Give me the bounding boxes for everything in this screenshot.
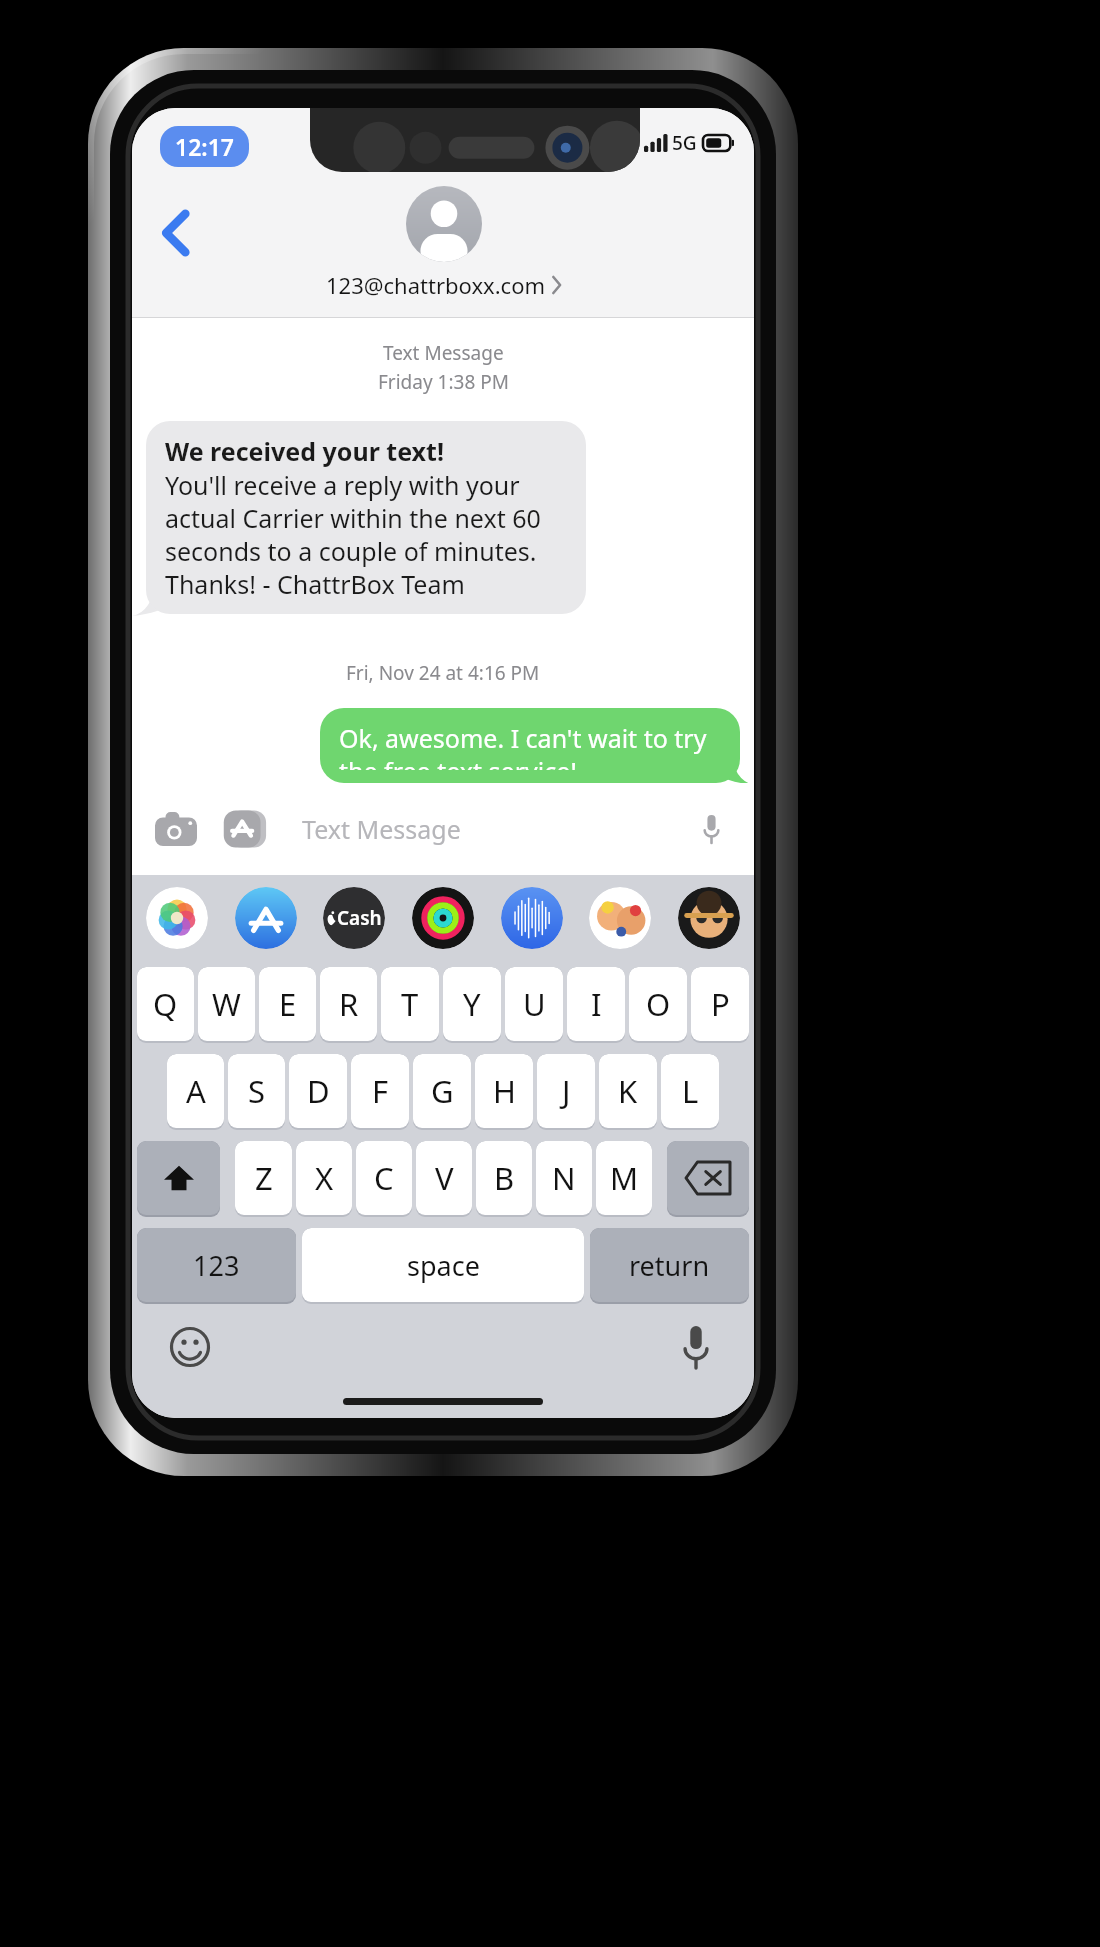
staticText: T bbox=[401, 983, 419, 1025]
staticText: E bbox=[279, 983, 297, 1025]
button[interactable]: Text Message bbox=[284, 802, 738, 856]
button[interactable]: E bbox=[259, 967, 316, 1041]
staticText: G bbox=[431, 1070, 454, 1112]
staticText: B bbox=[494, 1157, 515, 1199]
button[interactable]: Apps bbox=[216, 801, 272, 857]
staticText: S bbox=[248, 1070, 266, 1112]
button[interactable]: Dictation bbox=[670, 1321, 722, 1373]
button[interactable]: B bbox=[476, 1141, 532, 1215]
button[interactable]: T bbox=[381, 967, 439, 1041]
staticText: Text Message bbox=[302, 812, 461, 846]
button[interactable]: 123@chattrboxx.com bbox=[326, 186, 561, 300]
staticText: Friday 1:38 PM bbox=[378, 369, 509, 395]
staticText: A bbox=[186, 1070, 206, 1112]
staticText: Q bbox=[153, 983, 178, 1025]
staticText: I bbox=[591, 983, 602, 1025]
button[interactable]: C bbox=[356, 1141, 412, 1215]
staticText: space bbox=[407, 1247, 480, 1284]
button[interactable]: D bbox=[289, 1054, 347, 1128]
button[interactable]: K bbox=[599, 1054, 657, 1128]
staticText: 12:17 bbox=[175, 131, 234, 162]
button[interactable]: H bbox=[475, 1054, 533, 1128]
staticText: K bbox=[618, 1070, 638, 1112]
button[interactable]: App bbox=[412, 887, 474, 949]
button[interactable]: P bbox=[691, 967, 749, 1041]
staticText: C bbox=[374, 1157, 394, 1199]
button[interactable]: Q bbox=[137, 967, 194, 1041]
staticText: You'll receive a reply with your actual … bbox=[165, 468, 567, 601]
button[interactable]: space bbox=[302, 1228, 584, 1302]
button[interactable]: We received your text! bbox=[146, 421, 586, 614]
button[interactable]: App bbox=[501, 887, 563, 949]
button[interactable]: X bbox=[296, 1141, 352, 1215]
staticText: W bbox=[212, 983, 241, 1025]
staticText: return bbox=[629, 1247, 710, 1284]
button[interactable]: Emoji bbox=[164, 1321, 216, 1373]
button[interactable]: G bbox=[413, 1054, 471, 1128]
button[interactable]: U bbox=[505, 967, 563, 1041]
staticText: U bbox=[523, 983, 546, 1025]
button[interactable]: Z bbox=[235, 1141, 292, 1215]
button[interactable]: A bbox=[167, 1054, 224, 1128]
button[interactable]: S bbox=[228, 1054, 285, 1128]
staticText: 123@chattrboxx.com bbox=[326, 270, 546, 300]
staticText: 5G bbox=[672, 130, 697, 156]
button[interactable]: L bbox=[661, 1054, 719, 1128]
button[interactable]: M bbox=[596, 1141, 652, 1215]
button[interactable]: App bbox=[589, 887, 651, 949]
staticText: Fri, Nov 24 at 4:16 PM bbox=[346, 660, 540, 686]
button[interactable]: App bbox=[235, 887, 297, 949]
button[interactable]: O bbox=[629, 967, 687, 1041]
staticText: Z bbox=[255, 1157, 273, 1199]
staticText: Y bbox=[463, 983, 481, 1025]
button[interactable]: App bbox=[146, 887, 208, 949]
button[interactable]: Ok, awesome. I can't wait to try the fre… bbox=[320, 708, 740, 783]
staticText: O bbox=[646, 983, 671, 1025]
button[interactable]: R bbox=[320, 967, 377, 1041]
staticText: Text Message bbox=[383, 340, 504, 366]
staticText: Ok, awesome. I can't wait to try the fre… bbox=[339, 721, 721, 770]
button[interactable]: Y bbox=[443, 967, 501, 1041]
button[interactable]: return bbox=[590, 1228, 749, 1302]
staticText: J bbox=[562, 1070, 571, 1112]
staticText: X bbox=[315, 1157, 334, 1199]
staticText: P bbox=[711, 983, 730, 1025]
button[interactable]: J bbox=[537, 1054, 595, 1128]
button[interactable]: V bbox=[416, 1141, 472, 1215]
staticText: F bbox=[372, 1070, 389, 1112]
staticText: Cash bbox=[337, 905, 382, 931]
button[interactable]: I bbox=[567, 967, 625, 1041]
staticText: R bbox=[339, 983, 359, 1025]
button[interactable]: 123 bbox=[137, 1228, 296, 1302]
staticText: D bbox=[307, 1070, 330, 1112]
button[interactable]: F bbox=[351, 1054, 409, 1128]
button[interactable]: Delete bbox=[667, 1141, 749, 1215]
button[interactable]: Shift bbox=[137, 1141, 220, 1215]
staticText: M bbox=[610, 1157, 639, 1199]
staticText: V bbox=[435, 1157, 454, 1199]
staticText: N bbox=[552, 1157, 576, 1199]
button[interactable]: N bbox=[536, 1141, 592, 1215]
button[interactable]: Camera bbox=[148, 801, 204, 857]
button[interactable]: App bbox=[323, 887, 385, 949]
staticText: L bbox=[682, 1070, 699, 1112]
staticText: 123 bbox=[193, 1247, 240, 1284]
button[interactable]: Back bbox=[146, 203, 206, 263]
button[interactable]: W bbox=[198, 967, 255, 1041]
staticText: We received your text! bbox=[165, 434, 444, 468]
staticText: H bbox=[493, 1070, 516, 1112]
button[interactable]: App bbox=[678, 887, 740, 949]
